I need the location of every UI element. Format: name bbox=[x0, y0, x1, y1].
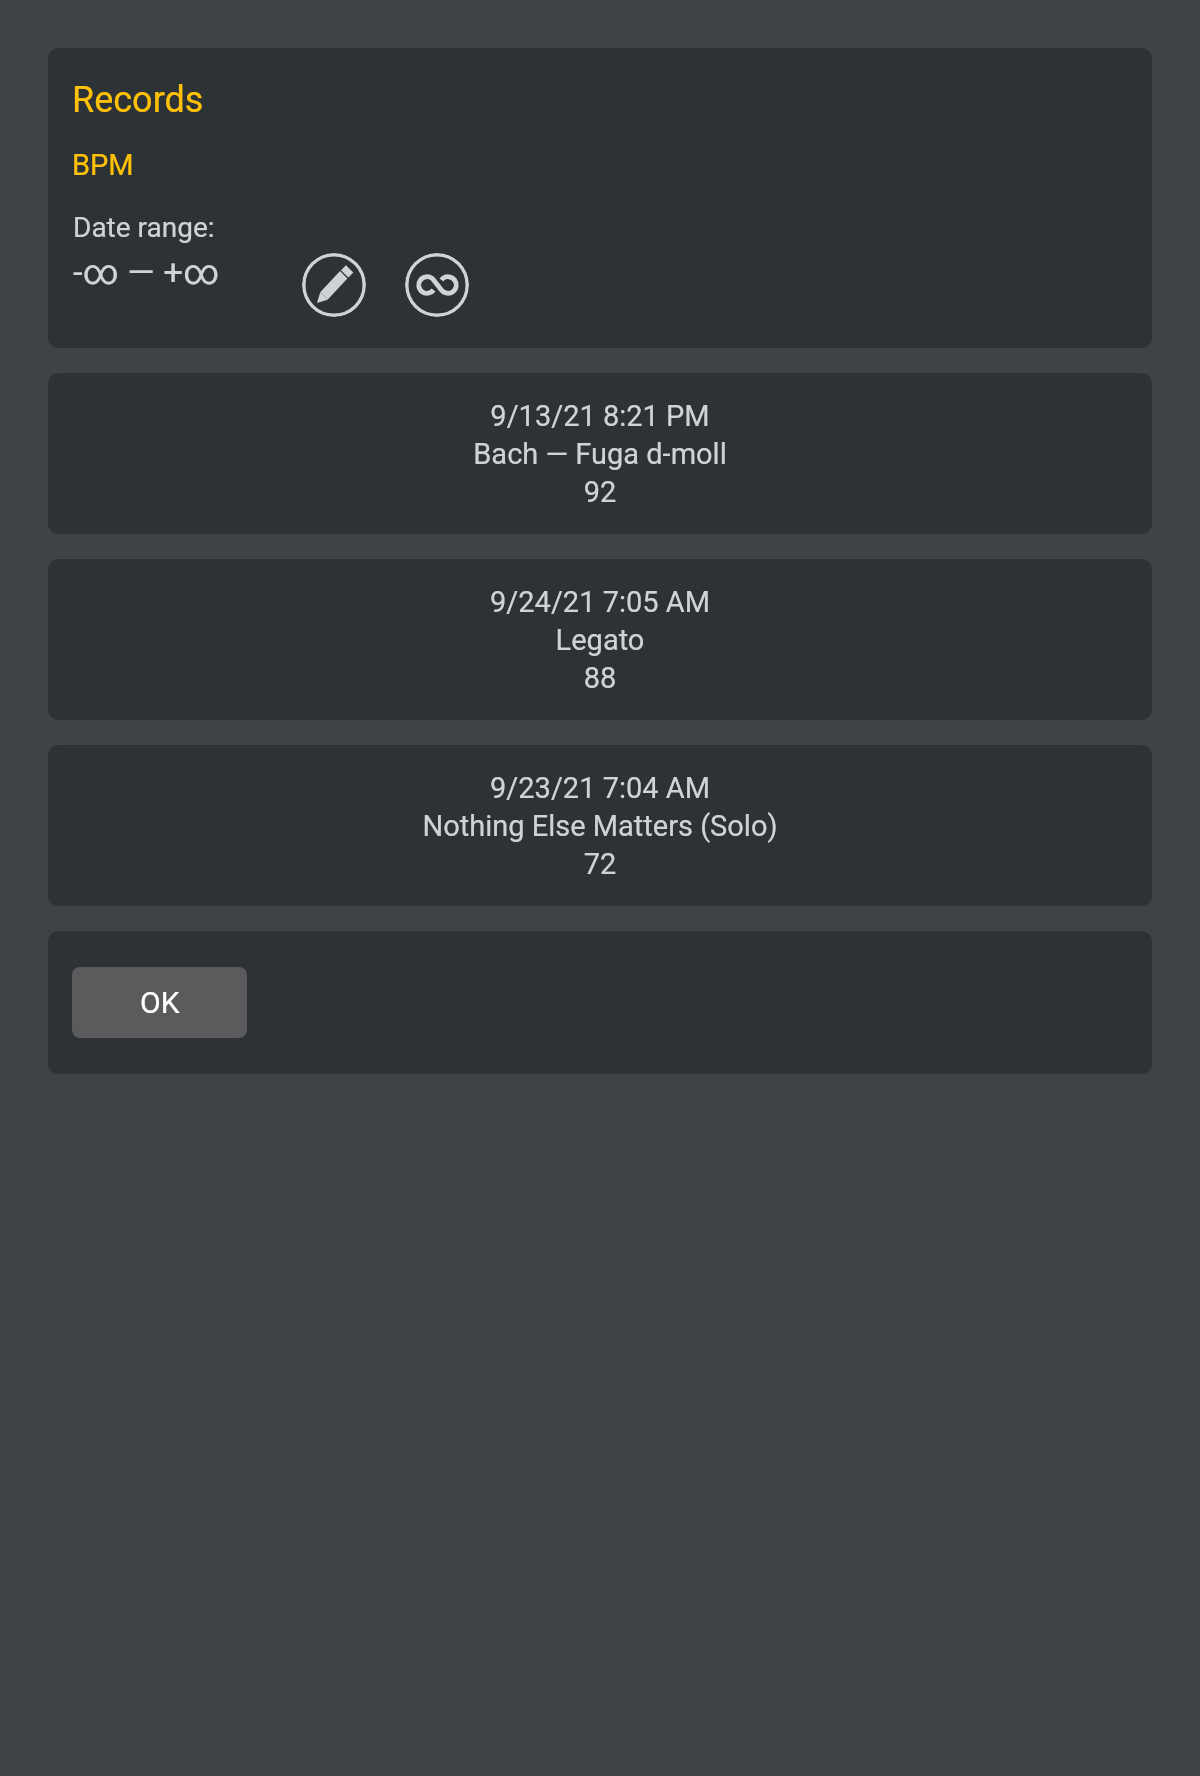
staticText: 9/23/21 7:04 AM Nothing Else Matters (So… bbox=[48, 771, 1152, 881]
button[interactable]: Set infinite range bbox=[405, 253, 469, 317]
button[interactable]: 9/24/21 7:05 AM Legato 88 bbox=[48, 559, 1152, 720]
staticText: -∞ — +∞ bbox=[73, 252, 220, 293]
staticText: Date range: bbox=[73, 211, 215, 244]
staticText: Records bbox=[72, 79, 204, 121]
staticText: BPM bbox=[72, 148, 134, 182]
staticText: 9/13/21 8:21 PM Bach — Fuga d-moll 92 bbox=[48, 399, 1152, 509]
staticText: OK bbox=[140, 985, 180, 1020]
staticText: 9/24/21 7:05 AM Legato 88 bbox=[48, 585, 1152, 695]
button[interactable]: 9/13/21 8:21 PM Bach — Fuga d-moll 92 bbox=[48, 373, 1152, 534]
button[interactable]: 9/23/21 7:04 AM Nothing Else Matters (So… bbox=[48, 745, 1152, 906]
button[interactable]: Edit date range bbox=[302, 253, 366, 317]
button[interactable]: OK bbox=[72, 967, 247, 1038]
